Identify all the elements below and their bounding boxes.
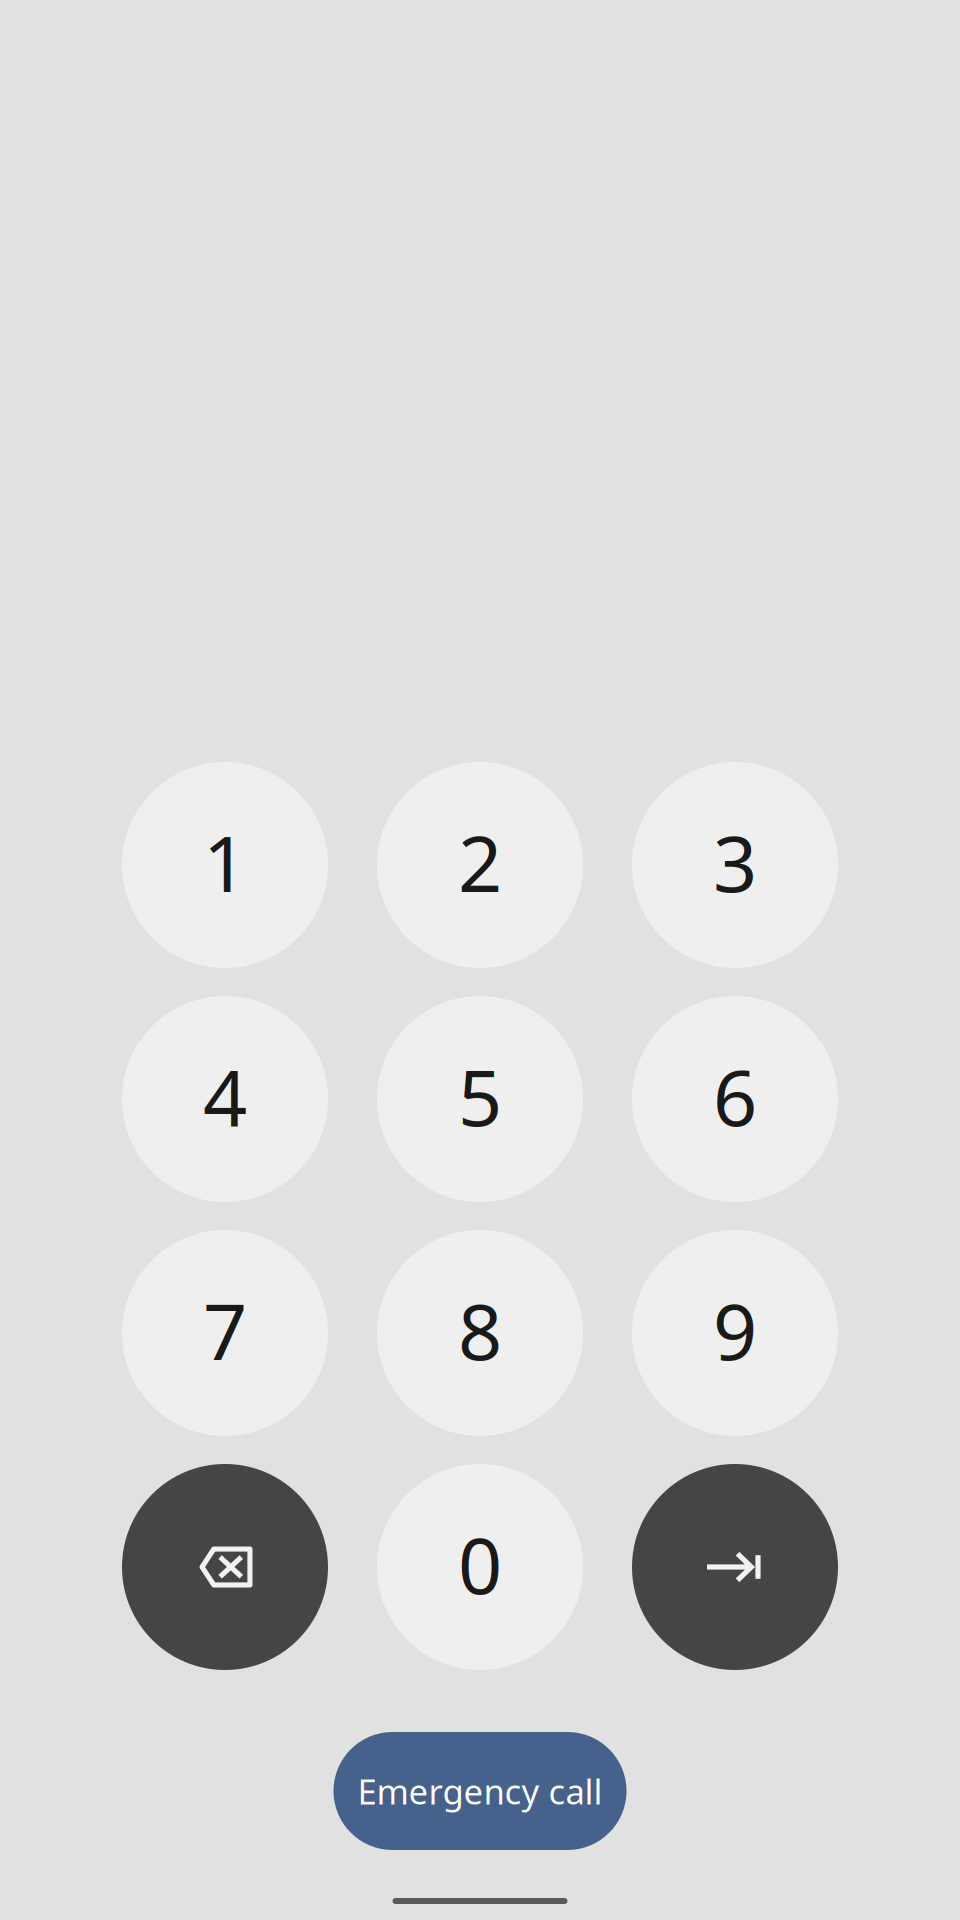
staticText: 3: [713, 811, 757, 913]
button[interactable]: Enter: [632, 1464, 838, 1670]
staticText: 4: [203, 1045, 247, 1147]
staticText: 5: [458, 1045, 502, 1147]
staticText: 9: [713, 1279, 757, 1381]
staticText: 7: [203, 1279, 247, 1381]
button[interactable]: 4: [122, 996, 328, 1202]
button[interactable]: Delete: [122, 1464, 328, 1670]
button[interactable]: 6: [632, 996, 838, 1202]
button[interactable]: Emergency call: [333, 1732, 626, 1850]
staticText: 0: [458, 1513, 502, 1615]
button[interactable]: 9: [632, 1230, 838, 1436]
button[interactable]: 3: [632, 762, 838, 968]
staticText: Emergency call: [357, 1768, 602, 1814]
staticText: 2: [458, 811, 502, 913]
staticText: 6: [713, 1045, 757, 1147]
button[interactable]: 1: [122, 762, 328, 968]
button[interactable]: 5: [377, 996, 583, 1202]
button[interactable]: 8: [377, 1230, 583, 1436]
button[interactable]: 0: [377, 1464, 583, 1670]
staticText: 1: [203, 811, 247, 913]
button[interactable]: 2: [377, 762, 583, 968]
button[interactable]: 7: [122, 1230, 328, 1436]
staticText: 8: [458, 1279, 502, 1381]
